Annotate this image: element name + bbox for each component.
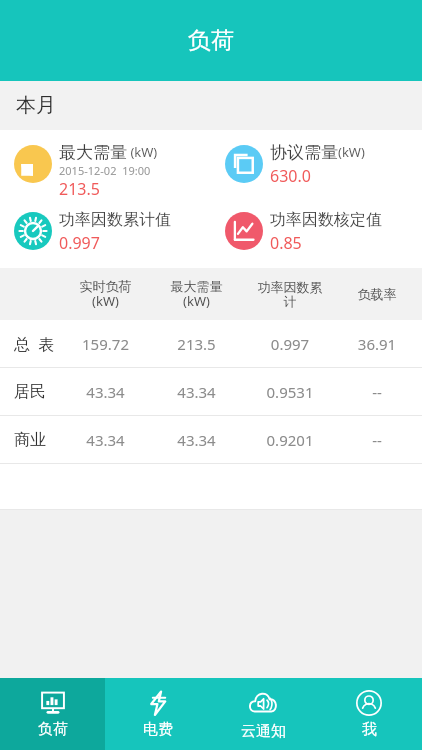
staticText: 43.34 [151, 430, 242, 450]
staticText: -- [338, 430, 416, 450]
staticText: -- [338, 382, 416, 402]
staticText: 43.34 [60, 430, 151, 450]
staticText: 0.997 [242, 334, 338, 354]
staticText: 负荷 [188, 26, 234, 55]
staticText: 213.5 [59, 178, 100, 200]
button[interactable]: 功率因数累计值 [0, 206, 211, 258]
staticText: 最大需量 (kW) [151, 278, 242, 310]
staticText: 0.997 [59, 232, 100, 254]
staticText: 0.9201 [242, 430, 338, 450]
button[interactable]: 商业 [0, 416, 422, 463]
staticText: 630.0 [270, 165, 311, 187]
staticText: 43.34 [60, 382, 151, 402]
staticText: 协议需量 [270, 142, 338, 163]
staticText: 2015-12-02 19:00 [59, 163, 151, 178]
staticText: 电费 [143, 720, 173, 739]
staticText: 0.85 [270, 232, 302, 254]
staticText: 功率因数累计值 [59, 210, 171, 230]
staticText: 商业 [14, 430, 46, 450]
button[interactable]: 居民 [0, 368, 422, 415]
button[interactable]: 协议需量 [211, 138, 422, 191]
button[interactable]: 负荷 [0, 678, 105, 750]
staticText: 功率因数核定值 [270, 210, 382, 230]
staticText: (kW) [338, 143, 365, 161]
staticText: 居民 [14, 382, 46, 402]
button[interactable]: 电费 [105, 678, 210, 750]
staticText: (kW) [127, 143, 158, 161]
staticText: 实时负荷 (kW) [60, 278, 151, 310]
staticText: 0.9531 [242, 382, 338, 402]
staticText: 36.91 [338, 334, 416, 354]
button[interactable]: 云通知 [210, 678, 316, 750]
staticText: 本月 [16, 93, 56, 118]
staticText: 云通知 [241, 722, 286, 741]
staticText: 负载率 [338, 286, 416, 302]
staticText: 我 [362, 720, 377, 739]
staticText: 213.5 [151, 334, 242, 354]
button[interactable]: 我 [316, 678, 422, 750]
staticText: 负荷 [38, 720, 68, 739]
staticText: 功率因数累 计 [242, 279, 338, 310]
button[interactable]: 功率因数核定值 [211, 206, 422, 258]
button[interactable]: 总 表 [0, 320, 422, 367]
staticText: 43.34 [151, 382, 242, 402]
staticText: 最大需量 [59, 142, 127, 163]
staticText: 159.72 [60, 334, 151, 354]
button[interactable]: 最大需量 [0, 138, 211, 204]
staticText: 总 表 [14, 333, 55, 355]
